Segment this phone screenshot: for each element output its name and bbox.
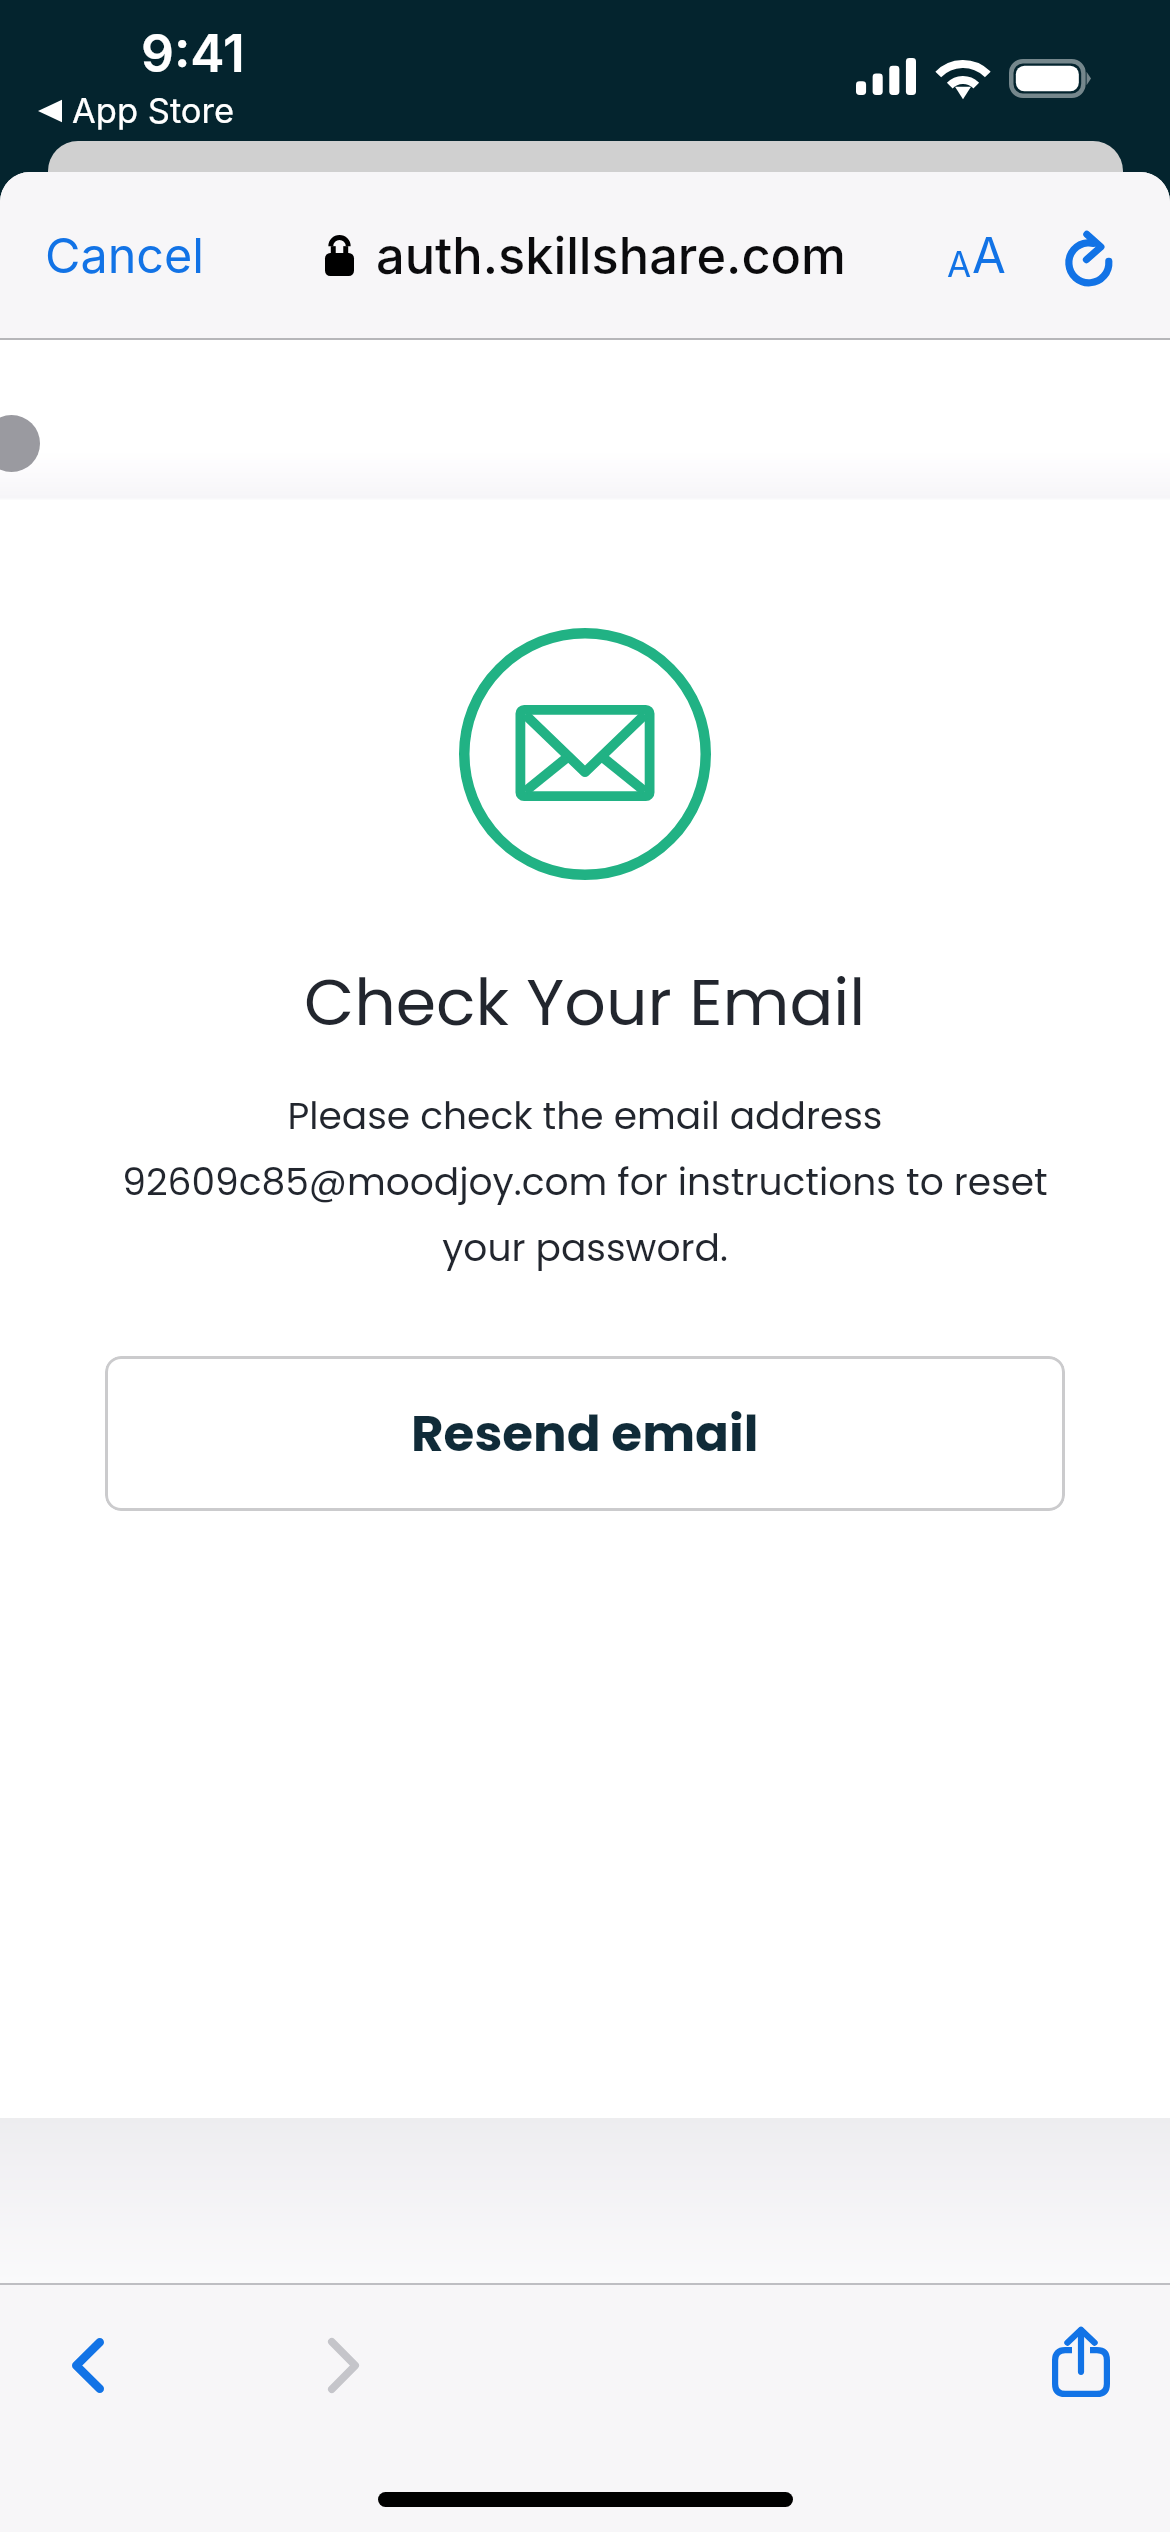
button[interactable]: Forward xyxy=(288,2310,398,2420)
staticText: Cancel xyxy=(45,226,205,285)
staticText: Check Your Email xyxy=(304,957,866,1048)
staticText: A xyxy=(947,243,972,285)
button[interactable]: Share xyxy=(1029,2309,1133,2413)
button[interactable]: Resend email xyxy=(105,1356,1065,1511)
staticText: 9:41 xyxy=(141,22,245,84)
staticText: A xyxy=(972,226,1006,285)
button[interactable]: Address bar xyxy=(307,203,864,308)
staticText: App Store xyxy=(72,90,235,132)
button[interactable]: Back xyxy=(33,2310,143,2420)
staticText: Resend email xyxy=(411,1399,759,1469)
button[interactable]: Cancel xyxy=(0,172,225,338)
staticText: auth.skillshare.com xyxy=(376,225,846,286)
button[interactable]: Text size xyxy=(926,195,1026,315)
staticText: Please check the email address 92609c85@… xyxy=(0,1090,1170,1275)
button[interactable]: Reload xyxy=(1033,200,1143,310)
